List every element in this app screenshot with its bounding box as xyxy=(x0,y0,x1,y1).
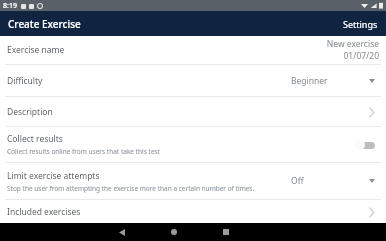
staticText: Create Exercise xyxy=(8,17,81,31)
staticText: 8:19 xyxy=(3,1,17,11)
button[interactable]: Toggle Collect results xyxy=(349,136,379,154)
button[interactable]: Open Difficulty options xyxy=(365,74,379,88)
button[interactable]: Home xyxy=(163,223,185,241)
staticText: Settings xyxy=(343,18,378,30)
button[interactable]: Description xyxy=(0,97,386,126)
staticText: Description xyxy=(7,106,53,118)
button[interactable]: Settings xyxy=(335,11,386,36)
other: Open Included exercises xyxy=(363,204,379,220)
staticText: New exercise 01/07/20 xyxy=(299,38,379,62)
button[interactable]: Recent apps xyxy=(215,223,237,241)
staticText: Collect results online from users that t… xyxy=(7,147,161,156)
other: Open Description xyxy=(363,104,379,120)
button[interactable]: Open Limit exercise attempts options xyxy=(365,174,379,188)
staticText: Exercise name xyxy=(7,44,65,56)
button[interactable]: Difficulty xyxy=(0,65,386,96)
button[interactable]: Exercise name xyxy=(0,36,386,64)
staticText: Limit exercise attempts xyxy=(7,170,100,182)
staticText: Included exercises xyxy=(7,206,81,218)
staticText: Stop the user from attempting the exerci… xyxy=(7,184,255,193)
staticText: Off xyxy=(291,175,304,187)
staticText: Difficulty xyxy=(7,75,43,87)
staticText: Beginner xyxy=(291,75,328,87)
button[interactable]: Limit exercise attempts xyxy=(0,163,386,199)
button[interactable]: Included exercises xyxy=(0,200,386,223)
button[interactable]: Back xyxy=(111,223,133,241)
button[interactable]: Collect results xyxy=(0,127,386,162)
staticText: Collect results xyxy=(7,133,63,145)
